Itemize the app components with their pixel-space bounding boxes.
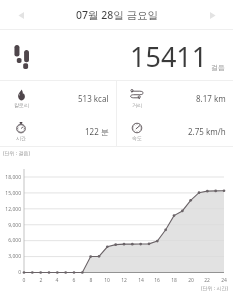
- staticText: 9,000: [0, 222, 21, 229]
- staticText: 10: [101, 277, 113, 284]
- button[interactable]: 속도: [116, 114, 233, 147]
- staticText: (단위 : 걸음): [3, 150, 30, 157]
- staticText: (단위 : 시간): [201, 285, 228, 292]
- staticText: 3,000: [0, 253, 21, 260]
- staticText: 0: [18, 277, 30, 284]
- staticText: 513 kcal: [78, 93, 109, 104]
- staticText: 8.17 km: [196, 93, 226, 104]
- button[interactable]: Next day: [191, 0, 233, 30]
- button[interactable]: 시간: [0, 114, 116, 147]
- staticText: 2: [35, 277, 47, 284]
- button[interactable]: 칼로리: [0, 81, 116, 114]
- staticText: 24: [218, 277, 230, 284]
- staticText: 칼로리: [14, 102, 29, 108]
- staticText: 거리: [132, 102, 142, 108]
- button[interactable]: 15411: [0, 30, 233, 81]
- staticText: 15,000: [0, 190, 21, 197]
- staticText: 22: [201, 277, 213, 284]
- staticText: 12,000: [0, 206, 21, 213]
- staticText: 15411: [130, 38, 208, 75]
- staticText: 속도: [132, 135, 142, 141]
- staticText: 12: [118, 277, 130, 284]
- button[interactable]: Previous day: [0, 0, 42, 30]
- staticText: 시간: [16, 135, 26, 141]
- staticText: 18: [168, 277, 180, 284]
- staticText: 18,000: [0, 174, 21, 181]
- staticText: 6: [68, 277, 80, 284]
- staticText: 122 분: [85, 126, 109, 137]
- staticText: 16: [151, 277, 163, 284]
- staticText: 0: [0, 269, 21, 276]
- staticText: 걸음: [211, 63, 225, 72]
- staticText: 6,000: [0, 237, 21, 244]
- staticText: 8: [85, 277, 97, 284]
- staticText: 2.75 km/h: [188, 126, 226, 137]
- staticText: 20: [185, 277, 197, 284]
- staticText: 14: [135, 277, 147, 284]
- staticText: 4: [51, 277, 63, 284]
- button[interactable]: 거리: [116, 81, 233, 114]
- staticText: 07월 28일 금요일: [76, 8, 158, 22]
